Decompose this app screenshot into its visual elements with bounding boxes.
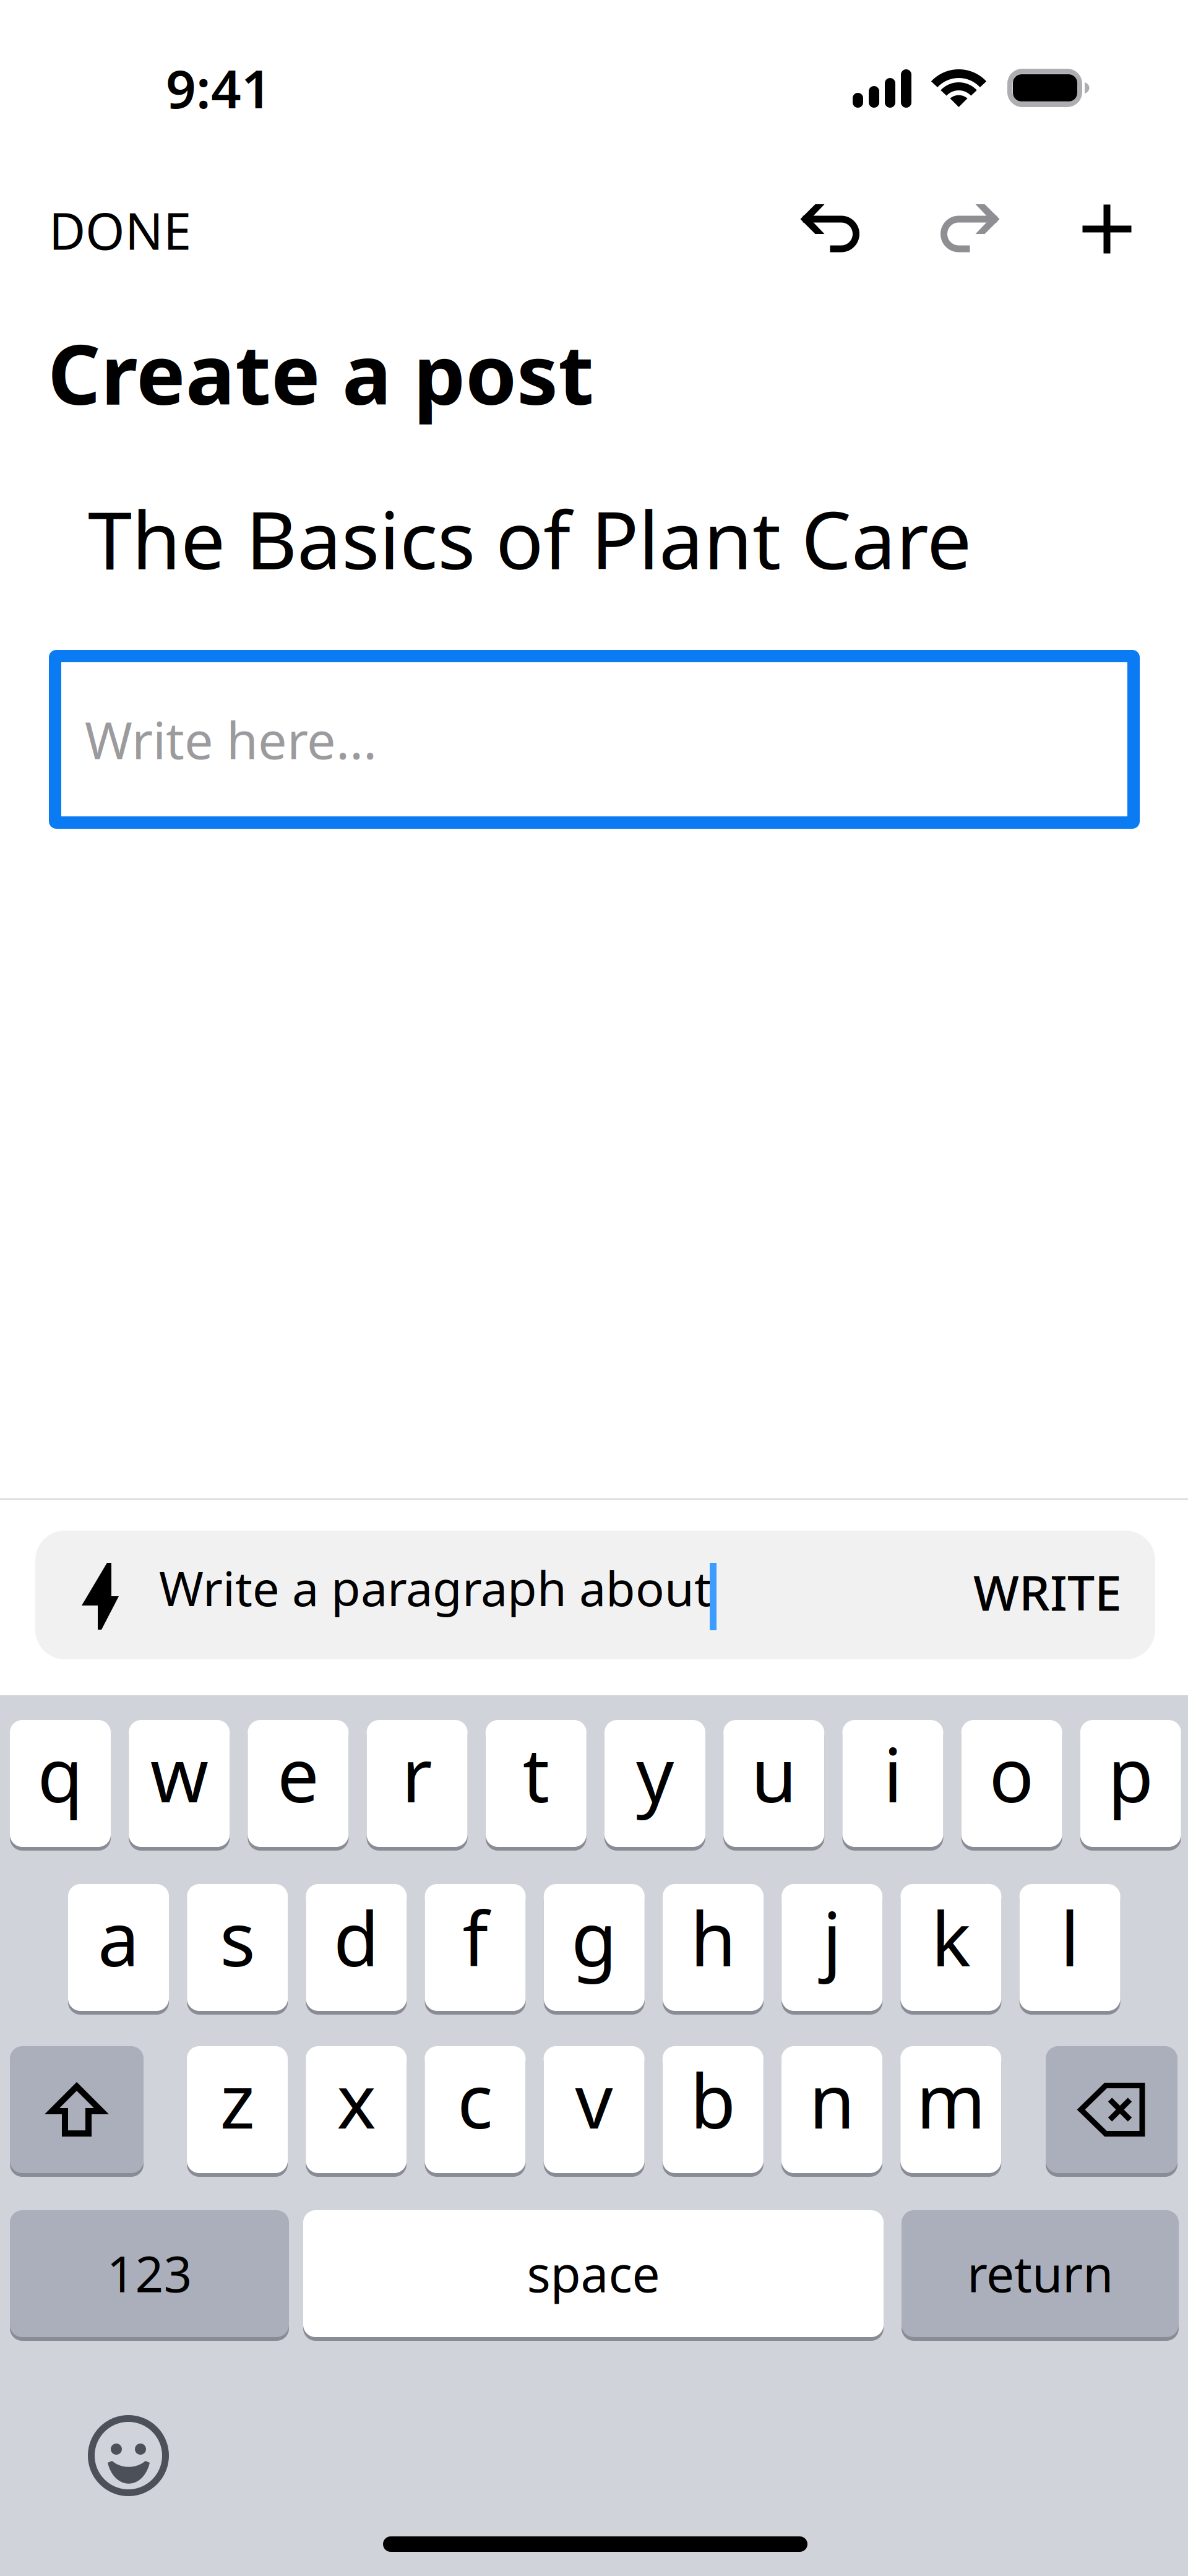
staticText: q <box>37 1724 83 1823</box>
button[interactable]: r <box>367 1720 468 1851</box>
button[interactable]: z <box>187 2046 288 2177</box>
staticText: i <box>883 1724 902 1823</box>
button[interactable]: m <box>900 2046 1001 2177</box>
button[interactable]: e <box>248 1720 349 1851</box>
button[interactable]: s <box>187 1884 288 2015</box>
button[interactable]: h <box>663 1884 764 2015</box>
staticText: e <box>277 1724 319 1823</box>
button[interactable]: y <box>605 1720 705 1851</box>
staticText: space <box>527 2240 660 2306</box>
button[interactable]: u <box>723 1720 824 1851</box>
staticText: j <box>822 1888 842 1987</box>
staticText: l <box>1060 1888 1079 1987</box>
staticText: a <box>98 1888 139 1987</box>
staticText: WRITE <box>973 1560 1122 1624</box>
button[interactable]: q <box>10 1720 111 1851</box>
staticText: n <box>809 2050 855 2149</box>
button[interactable]: k <box>901 1884 1001 2015</box>
staticText: b <box>690 2050 736 2149</box>
staticText: y <box>636 1724 674 1823</box>
button[interactable]: v <box>544 2046 644 2177</box>
button[interactable]: g <box>544 1884 645 2015</box>
button[interactable]: j <box>782 1884 882 2015</box>
button[interactable]: return <box>902 2210 1179 2341</box>
button[interactable]: f <box>425 1884 526 2015</box>
button[interactable]: l <box>1019 1884 1120 2015</box>
staticText: w <box>150 1724 208 1823</box>
button[interactable]: t <box>486 1720 586 1851</box>
staticText: t <box>523 1724 549 1823</box>
staticText: s <box>220 1888 255 1987</box>
staticText: m <box>916 2050 985 2149</box>
staticText: 123 <box>107 2240 192 2306</box>
staticText: r <box>402 1724 433 1823</box>
staticText: v <box>575 2050 613 2149</box>
button[interactable]: 123 <box>10 2210 289 2341</box>
button[interactable]: Delete <box>1046 2046 1177 2177</box>
staticText: c <box>457 2050 493 2149</box>
button[interactable]: n <box>781 2046 882 2177</box>
button[interactable]: a <box>68 1884 169 2015</box>
staticText: x <box>337 2050 376 2149</box>
staticText: The Basics of Plant Care <box>88 486 971 591</box>
staticText: f <box>463 1888 488 1987</box>
button[interactable]: c <box>425 2046 526 2177</box>
button[interactable]: space <box>303 2210 884 2341</box>
button[interactable]: Redo <box>926 186 1018 266</box>
button[interactable]: Write here... <box>49 650 1140 829</box>
staticText: o <box>989 1724 1034 1823</box>
button[interactable]: o <box>961 1720 1062 1851</box>
button[interactable]: i <box>842 1720 943 1851</box>
staticText: Write here... <box>85 705 377 773</box>
button[interactable]: WRITE <box>918 1531 1122 1659</box>
staticText: return <box>967 2240 1113 2306</box>
staticText: Write a paragraph about <box>159 1556 712 1619</box>
staticText: Create a post <box>48 318 594 427</box>
staticText: DONE <box>49 197 191 264</box>
staticText: 9:41 <box>166 53 272 123</box>
button[interactable]: p <box>1080 1720 1181 1851</box>
button[interactable]: Add <box>1064 189 1150 269</box>
button[interactable]: Shift <box>10 2046 144 2177</box>
staticText: k <box>931 1888 971 1987</box>
staticText: g <box>571 1888 617 1987</box>
staticText: h <box>690 1888 736 1987</box>
button[interactable]: w <box>129 1720 230 1851</box>
button[interactable]: DONE <box>0 184 247 277</box>
button[interactable]: d <box>306 1884 407 2015</box>
staticText: u <box>751 1724 797 1823</box>
staticText: p <box>1108 1724 1154 1823</box>
staticText: d <box>333 1888 379 1987</box>
button[interactable]: Emoji keyboard <box>88 2415 169 2496</box>
staticText: z <box>220 2050 255 2149</box>
button[interactable]: Undo <box>781 186 874 266</box>
button[interactable]: b <box>663 2046 763 2177</box>
button[interactable]: x <box>306 2046 407 2177</box>
